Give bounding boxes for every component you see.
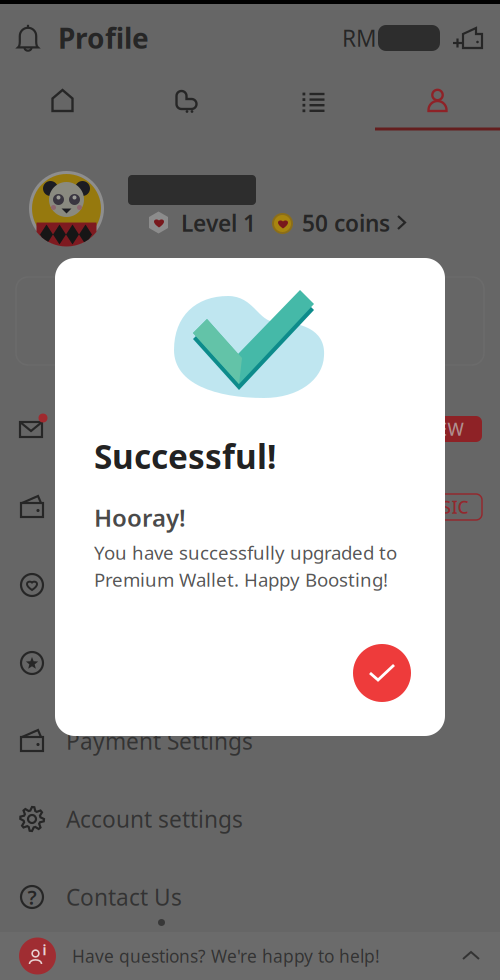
staticText: BASIC	[419, 495, 468, 518]
staticText: My Coins	[66, 570, 164, 600]
staticText: Premium Wallet. Happy Boosting!	[94, 567, 388, 592]
button[interactable]: i	[0, 932, 500, 980]
button[interactable]: Profile	[375, 72, 500, 130]
staticText: i	[42, 941, 46, 959]
staticText: Successful!	[94, 434, 276, 478]
button[interactable]: Home	[0, 72, 125, 130]
staticText: Payment Settings	[66, 726, 253, 756]
staticText: RM	[342, 23, 377, 53]
staticText: Profile	[58, 19, 149, 57]
staticText: Account settings	[66, 804, 243, 834]
staticText: ?	[27, 884, 36, 910]
staticText: Contact Us	[66, 882, 182, 912]
button[interactable]: Inbox	[0, 390, 500, 468]
button[interactable]: Notifications	[16, 24, 40, 52]
button[interactable]: Done	[353, 644, 411, 702]
button[interactable]: Orders	[250, 72, 375, 130]
button[interactable]: Chats	[125, 72, 250, 130]
button[interactable]: ?	[0, 858, 500, 936]
button[interactable]: Account settings	[0, 780, 500, 858]
staticText: 50 coins	[302, 208, 390, 238]
button[interactable]: Payment Settings	[0, 702, 500, 780]
staticText: My Wallet	[66, 492, 172, 522]
staticText: Hooray!	[94, 502, 186, 533]
button[interactable]: Avatar	[29, 171, 104, 246]
button[interactable]: Level 1, 50 coins	[148, 210, 416, 236]
staticText: You have successfully upgraded to	[94, 540, 397, 565]
button[interactable]: Promotion	[16, 277, 484, 365]
button[interactable]: My Coins	[0, 546, 500, 624]
button[interactable]: My Wallet	[0, 468, 500, 546]
staticText: Have questions? We're happy to help!	[72, 944, 380, 967]
staticText: NEW	[424, 417, 463, 440]
button[interactable]: Top up wallet	[440, 24, 484, 52]
button[interactable]: My Rewards	[0, 624, 500, 702]
staticText: Level 1	[181, 208, 256, 238]
